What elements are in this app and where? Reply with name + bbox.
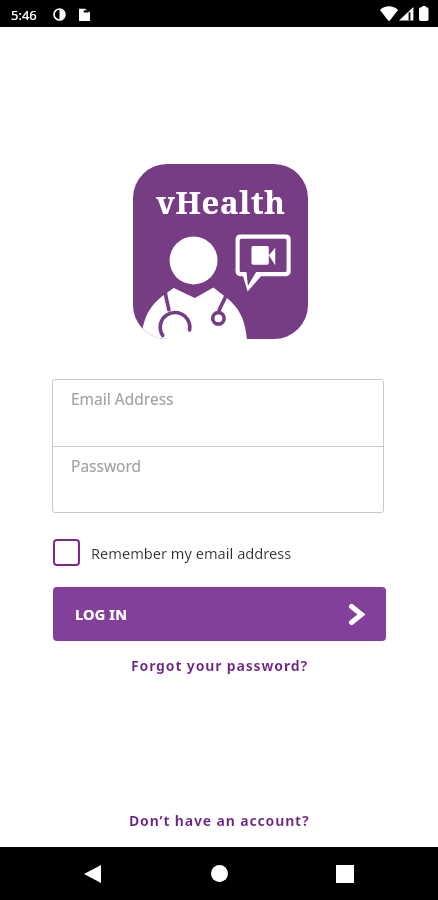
staticText: Forgot your password? xyxy=(131,656,308,675)
button[interactable]: Email Address xyxy=(52,379,384,446)
button[interactable]: Don’t have an account? xyxy=(121,808,318,833)
button[interactable]: Password xyxy=(52,446,384,513)
staticText: Remember my email address xyxy=(91,543,292,563)
staticText: Password xyxy=(71,455,142,476)
staticText: 5:46 xyxy=(11,6,37,24)
staticText: Don’t have an account? xyxy=(129,811,310,830)
button[interactable]: Remember my email address xyxy=(53,539,292,566)
button[interactable]: Forgot your password? xyxy=(123,653,316,678)
staticText: LOG IN xyxy=(75,604,128,624)
button[interactable]: Back xyxy=(68,847,116,900)
button[interactable]: LOG IN xyxy=(53,587,386,641)
staticText: vHealth xyxy=(156,181,286,223)
button[interactable]: Recent apps xyxy=(321,847,369,900)
staticText: Email Address xyxy=(71,388,174,409)
button[interactable]: Home xyxy=(195,847,243,900)
